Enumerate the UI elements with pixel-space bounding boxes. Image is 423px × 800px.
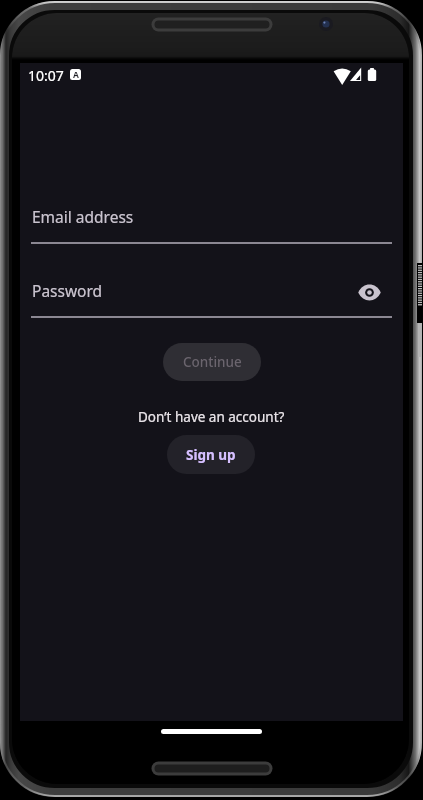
staticText: 10:07 bbox=[28, 66, 64, 85]
button[interactable]: Show password bbox=[351, 274, 387, 310]
staticText: Don’t have an account? bbox=[138, 408, 285, 426]
button[interactable]: Continue bbox=[163, 343, 261, 381]
staticText: A bbox=[73, 69, 79, 80]
staticText: Continue bbox=[183, 353, 242, 371]
button[interactable]: Sign up bbox=[167, 435, 255, 474]
staticText: Sign up bbox=[186, 446, 236, 464]
staticText: Email address bbox=[32, 206, 134, 227]
staticText: Password bbox=[32, 280, 103, 301]
